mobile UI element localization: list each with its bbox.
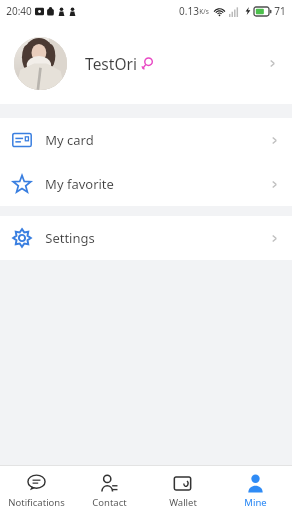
button[interactable]: My favorite	[0, 162, 292, 206]
button[interactable]: Settings	[0, 216, 292, 260]
staticText: My card	[45, 131, 94, 149]
staticText: Contact	[92, 496, 127, 509]
staticText: Notifications	[8, 496, 65, 509]
staticText: My favorite	[45, 175, 114, 193]
staticText: Settings	[45, 229, 95, 247]
staticText: 20:40	[6, 4, 32, 18]
staticText: Wallet	[169, 496, 197, 509]
staticText: TestOri	[85, 53, 137, 74]
button[interactable]: Notifications	[0, 466, 73, 516]
staticText: K/s	[199, 7, 209, 16]
staticText: 0.13	[179, 4, 199, 18]
button[interactable]: Contact	[73, 466, 146, 516]
button[interactable]: Mine	[219, 466, 292, 516]
button[interactable]: My card	[0, 118, 292, 162]
button[interactable]: TestOri	[0, 22, 292, 104]
staticText: 71	[274, 4, 286, 18]
staticText: Mine	[244, 496, 267, 509]
button[interactable]: Wallet	[146, 466, 219, 516]
